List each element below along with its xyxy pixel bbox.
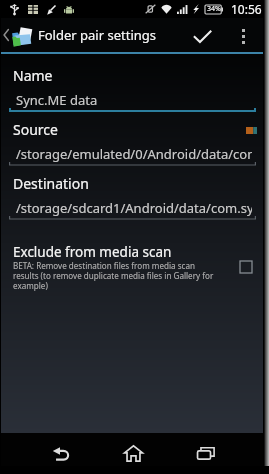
staticText: Source	[13, 120, 58, 139]
staticText: Folder pair settings	[38, 26, 156, 44]
button[interactable]: Name	[0, 61, 269, 110]
button[interactable]: Destination	[0, 169, 269, 218]
button[interactable]: Back	[40, 433, 80, 474]
staticText: /storage/sdcard1/Android/data/com.sync.m…	[16, 199, 252, 217]
button[interactable]: Save	[184, 21, 220, 52]
staticText: Name	[13, 66, 53, 85]
button[interactable]: Home	[113, 433, 153, 474]
button[interactable]: Recent apps	[186, 433, 226, 474]
button[interactable]: Navigate up	[0, 18, 36, 52]
button[interactable]: More options	[231, 20, 255, 52]
staticText: BETA: Remove destination files from medi…	[13, 260, 214, 291]
staticText: 10:56	[231, 1, 262, 17]
other: Navigate up	[3, 29, 9, 41]
button[interactable]: Exclude from media scan	[0, 237, 269, 289]
staticText: Exclude from media scan	[13, 243, 172, 261]
staticText: 34%	[207, 4, 221, 14]
button[interactable]: Source	[0, 115, 269, 164]
staticText: Destination	[13, 174, 89, 193]
staticText: Sync.ME data	[16, 91, 252, 109]
staticText: /storage/emulated/0/Android/data/com.syn…	[16, 145, 252, 163]
